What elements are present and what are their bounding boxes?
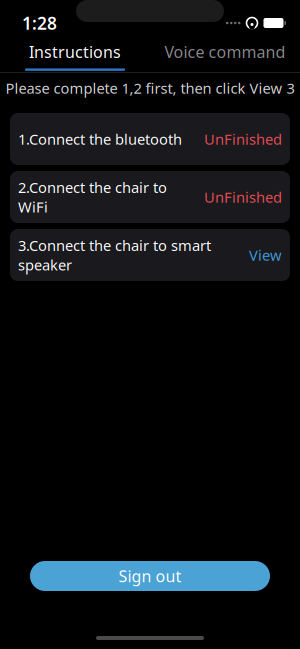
button[interactable]: Sign out [30, 561, 270, 591]
button[interactable]: 2.Connect the chair to WiFi [10, 171, 290, 223]
button[interactable]: Voice command [150, 40, 300, 72]
staticText: UnFinished [204, 129, 282, 149]
staticText: 2.Connect the chair to WiFi [18, 177, 167, 216]
staticText: UnFinished [204, 187, 282, 207]
button[interactable]: 3.Connect the chair to smart speaker [10, 229, 290, 281]
staticText: 3.Connect the chair to smart speaker [18, 235, 211, 274]
staticText: Instructions [29, 41, 121, 62]
staticText: 1:28 [22, 11, 57, 34]
button[interactable]: Instructions [0, 40, 150, 72]
staticText: View [249, 245, 282, 265]
staticText: Please complete 1,2 first, then click Vi… [5, 78, 294, 98]
staticText: 1.Connect the bluetooth [18, 129, 182, 149]
staticText: Voice command [164, 41, 285, 62]
button[interactable]: 1.Connect the bluetooth [10, 113, 290, 165]
staticText: Sign out [118, 565, 181, 587]
